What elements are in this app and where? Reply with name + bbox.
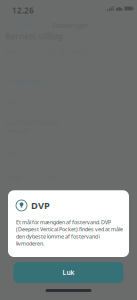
staticText: Scanninger — [52, 21, 88, 30]
staticText: Barnets stilling — [5, 31, 63, 42]
button[interactable]: Luk — [13, 262, 123, 283]
staticText: 12.26 — [12, 5, 34, 16]
staticText: Et mål for mængden af fostervand. DVP (D… — [16, 219, 123, 247]
staticText: Fostervand — [6, 77, 43, 86]
staticText: DVP — [31, 199, 50, 212]
staticText: Luk — [62, 268, 74, 277]
